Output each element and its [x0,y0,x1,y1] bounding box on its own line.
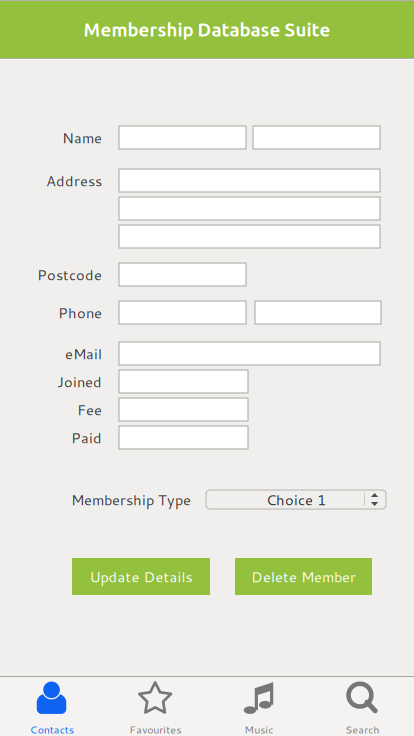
staticText: Choice 1 [266,489,326,510]
button[interactable]: Music [207,677,310,736]
button[interactable]: Text field [119,197,380,220]
staticText: Postcode [37,264,102,285]
staticText: Favourites [129,722,181,736]
staticText: Search [345,722,379,736]
button[interactable]: Delete Member [235,558,372,595]
staticText: Contacts [30,722,74,736]
button[interactable]: Favourites [103,677,207,736]
button[interactable]: Text field [119,342,380,365]
button[interactable]: Update Details [72,558,210,595]
button[interactable]: Text field [255,301,381,324]
button[interactable]: Text field [119,225,380,248]
staticText: Music [244,722,273,736]
button[interactable]: Text field [253,126,380,149]
staticText: Membership Database Suite [83,19,330,40]
button[interactable]: Text field [119,398,248,421]
button[interactable]: Text field [119,370,248,393]
staticText: Name [62,127,102,148]
staticText: Address [46,170,102,191]
staticText: Membership Type [71,489,191,510]
staticText: Delete Member [251,566,356,587]
button[interactable]: Text field [119,169,380,192]
button[interactable]: Choice 1 [206,490,386,509]
staticText: Joined [57,371,102,392]
staticText: Phone [58,302,102,323]
staticText: Paid [71,427,102,448]
button[interactable]: Text field [119,301,246,324]
staticText: eMail [65,343,102,364]
button[interactable]: Text field [119,263,246,286]
button[interactable]: Search [310,677,414,736]
staticText: Update Details [89,566,192,587]
button[interactable]: Text field [119,426,248,449]
button[interactable]: Contacts [0,677,103,736]
staticText: Fee [77,399,102,420]
button[interactable]: Text field [119,126,246,149]
